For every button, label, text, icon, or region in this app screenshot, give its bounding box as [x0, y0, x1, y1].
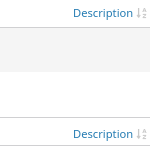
staticText: Description [73, 126, 134, 141]
button[interactable]: Sort by description, A to Z [137, 127, 147, 139]
button[interactable]: Sort by description, A to Z [137, 6, 147, 18]
button[interactable]: Description [0, 121, 150, 145]
button[interactable]: Description [0, 0, 150, 24]
staticText: Description [73, 5, 134, 20]
